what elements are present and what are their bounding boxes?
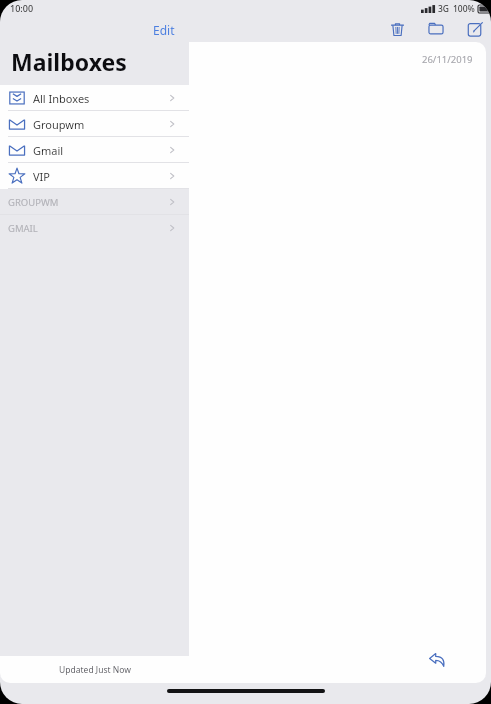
staticText: GMAIL — [8, 222, 38, 235]
staticText: VIP — [33, 169, 50, 184]
staticText: Edit — [153, 22, 175, 38]
staticText: 3G — [438, 3, 450, 15]
staticText: 26/11/2019 — [422, 53, 473, 66]
button[interactable]: VIP — [0, 163, 189, 189]
staticText: Mailboxes — [11, 46, 127, 77]
staticText: 10:00 — [10, 2, 34, 14]
button[interactable]: Reply — [426, 649, 448, 671]
button[interactable]: Move to folder — [425, 18, 447, 40]
staticText: Updated Just Now — [59, 664, 131, 676]
button[interactable]: Edit — [0, 21, 189, 39]
staticText: Groupwm — [33, 117, 85, 132]
staticText: 100% — [453, 3, 475, 15]
button[interactable]: Compose — [464, 18, 486, 40]
button[interactable]: Gmail — [0, 137, 189, 163]
button[interactable]: All Inboxes — [0, 85, 189, 111]
button[interactable]: Groupwm — [0, 111, 189, 137]
staticText: GROUPWM — [8, 196, 59, 209]
button[interactable]: GMAIL — [0, 215, 189, 241]
staticText: All Inboxes — [33, 91, 90, 106]
button[interactable]: Delete — [386, 18, 408, 40]
staticText: Gmail — [33, 143, 64, 158]
button[interactable]: GROUPWM — [0, 189, 189, 215]
